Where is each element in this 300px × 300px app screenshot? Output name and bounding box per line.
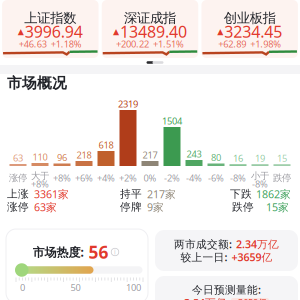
staticText: 跌停 (273, 172, 291, 184)
staticText: 上涨 (7, 187, 29, 200)
staticText: 15 (277, 152, 287, 164)
staticText: 1504 (162, 115, 182, 127)
staticText: 100 (126, 281, 141, 294)
staticText: 16 (233, 152, 243, 164)
staticText: 3996.94 (25, 21, 83, 42)
staticText: 2319 (118, 98, 138, 110)
staticText: 市场热度: (32, 244, 83, 260)
staticText: 217家 (147, 187, 176, 201)
button[interactable]: 今日预测量能: (155, 276, 298, 300)
staticText: 上证指数 (24, 10, 76, 26)
staticText: 13489.40 (120, 21, 187, 42)
staticText: 下跌 (230, 187, 252, 200)
staticText: 大于 (31, 170, 49, 182)
staticText: +46.63 (19, 38, 47, 50)
staticText: 0 (20, 281, 25, 294)
staticText: 持平 (120, 187, 142, 200)
staticText: 深证成指 (124, 10, 176, 26)
staticText: +3659亿 (231, 250, 272, 264)
staticText: 3361家 (34, 187, 69, 201)
button[interactable]: 两市成交额: (155, 230, 298, 271)
button[interactable]: 创业板指 (201, 0, 298, 58)
staticText: 2.84万亿 (184, 295, 227, 300)
staticText: 217 (142, 149, 157, 161)
staticText: 618 (98, 139, 113, 151)
staticText: -2% (164, 172, 180, 184)
staticText: 3234.45 (224, 21, 282, 42)
staticText: +8% (31, 178, 49, 190)
staticText: ▲ (217, 27, 223, 36)
staticText: ▲ (113, 27, 119, 36)
button[interactable]: 上证指数 (2, 0, 99, 58)
staticText: 创业板指 (224, 10, 276, 26)
staticText: -8% (230, 172, 246, 184)
staticText: +1.98% (250, 38, 281, 50)
staticText: 80 (211, 151, 221, 164)
staticText: 市场概况 (7, 74, 67, 92)
staticText: +1.51% (153, 38, 184, 50)
staticText: 涨停 (7, 200, 29, 213)
staticText: 218 (76, 149, 91, 161)
staticText: -4% (186, 172, 202, 184)
staticText: +8% (53, 172, 71, 184)
staticText: 110 (32, 151, 47, 163)
staticText: -8% (252, 178, 268, 190)
staticText: 9家 (147, 200, 164, 214)
staticText: 50 (70, 281, 80, 294)
staticText: 243 (186, 148, 201, 160)
staticText: 涨停 (9, 172, 27, 184)
staticText: +1.18% (51, 38, 82, 50)
staticText: 96 (57, 151, 67, 164)
staticText: 两市成交额: (174, 237, 232, 251)
staticText: +62.89 (218, 38, 246, 50)
staticText: 停牌 (120, 200, 142, 213)
staticText: +2% (119, 172, 137, 184)
staticText: 跌停 (232, 200, 254, 213)
staticText: +3659亿 (233, 296, 267, 300)
button[interactable]: 深证成指 (102, 0, 198, 58)
staticText: 19 (255, 152, 265, 164)
staticText: 小于 (251, 170, 269, 182)
staticText: 今日预测量能: (192, 282, 261, 297)
staticText: -6% (208, 172, 224, 184)
staticText: 15家 (266, 200, 289, 214)
staticText: 2.34万亿 (236, 237, 279, 251)
button[interactable]: 市场热度: (6, 229, 148, 300)
staticText: 63家 (34, 200, 57, 214)
staticText: ▲ (18, 27, 24, 36)
staticText: 较上一日: (180, 250, 227, 264)
staticText: +200.22 (116, 38, 149, 50)
staticText: +4% (97, 172, 115, 184)
staticText: 63 (13, 152, 23, 164)
staticText: +6% (75, 172, 93, 184)
staticText: i (114, 248, 116, 256)
staticText: 1862家 (256, 187, 291, 201)
staticText: 56 (83, 240, 108, 263)
staticText: 0% (143, 172, 156, 184)
